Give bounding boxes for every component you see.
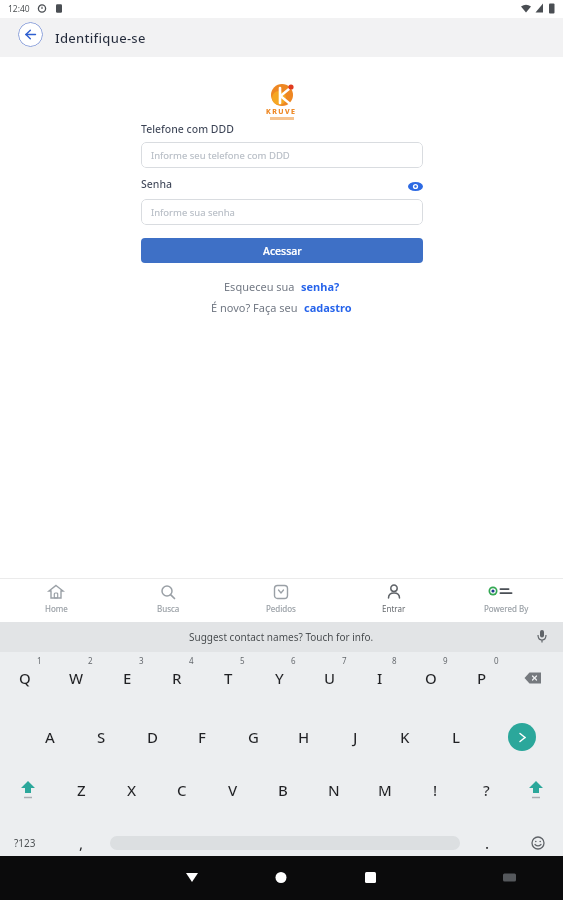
staticText: Telefone com DDD: [141, 122, 234, 136]
staticText: S: [97, 727, 106, 747]
staticText: I: [377, 668, 383, 688]
button[interactable]: P: [468, 665, 496, 691]
button[interactable]: O: [417, 665, 445, 691]
staticText: cadastro: [304, 300, 352, 315]
staticText: É novo? Faça seu: [211, 300, 304, 315]
staticText: E: [123, 668, 132, 688]
button[interactable]: Home: [0, 579, 112, 622]
button[interactable]: T: [214, 665, 242, 691]
button[interactable]: Acessar: [141, 238, 423, 263]
staticText: U: [324, 668, 336, 688]
button[interactable]: [524, 672, 542, 684]
staticText: K: [400, 727, 410, 747]
staticText: A: [45, 727, 55, 747]
button[interactable]: Z: [67, 777, 95, 803]
staticText: 7: [342, 655, 347, 666]
staticText: B: [278, 780, 288, 800]
staticText: 9: [443, 655, 448, 666]
button[interactable]: É novo? Faça seu: [211, 300, 352, 315]
button[interactable]: [19, 781, 37, 799]
button[interactable]: Informe sua senha: [141, 199, 423, 225]
button[interactable]: D: [138, 724, 166, 750]
staticText: Powered By: [484, 603, 529, 614]
button[interactable]: Powered By: [450, 579, 563, 622]
staticText: F: [198, 727, 206, 747]
staticText: 3: [139, 655, 144, 666]
staticText: P: [477, 668, 487, 688]
staticText: G: [248, 727, 259, 747]
staticText: !: [433, 780, 438, 800]
staticText: V: [228, 780, 238, 800]
button[interactable]: [531, 836, 545, 850]
button[interactable]: ?123: [9, 833, 41, 853]
button[interactable]: L: [442, 724, 470, 750]
staticText: C: [177, 780, 187, 800]
button[interactable]: F: [188, 724, 216, 750]
button[interactable]: K: [391, 724, 419, 750]
staticText: X: [127, 780, 137, 800]
button[interactable]: V: [219, 777, 247, 803]
button[interactable]: G: [239, 724, 267, 750]
staticText: Esqueceu sua: [224, 279, 301, 294]
button[interactable]: Busca: [112, 579, 224, 622]
button[interactable]: [508, 723, 536, 751]
staticText: ?: [483, 780, 490, 800]
staticText: R: [172, 668, 182, 688]
button[interactable]: Esqueceu sua: [224, 279, 340, 294]
staticText: H: [298, 727, 310, 747]
button[interactable]: I: [366, 665, 394, 691]
staticText: 5: [240, 655, 245, 666]
button[interactable]: [527, 781, 545, 799]
staticText: Z: [77, 780, 86, 800]
staticText: Y: [275, 668, 284, 688]
button[interactable]: C: [168, 777, 196, 803]
button[interactable]: A: [36, 724, 64, 750]
staticText: Entrar: [382, 603, 406, 614]
button[interactable]: N: [320, 777, 348, 803]
staticText: J: [353, 727, 358, 747]
staticText: Home: [45, 603, 68, 614]
button[interactable]: Informe seu telefone com DDD: [141, 142, 423, 168]
staticText: D: [147, 727, 158, 747]
button[interactable]: M: [371, 777, 399, 803]
staticText: Q: [19, 668, 31, 688]
staticText: Suggest contact names? Touch for info.: [189, 630, 374, 644]
button[interactable]: S: [87, 724, 115, 750]
staticText: 2: [88, 655, 93, 666]
staticText: ?123: [14, 836, 36, 850]
staticText: Busca: [157, 603, 180, 614]
staticText: .: [485, 833, 490, 853]
staticText: O: [425, 668, 437, 688]
staticText: Informe seu telefone com DDD: [151, 149, 290, 162]
staticText: 4: [189, 655, 194, 666]
button[interactable]: ,: [67, 830, 95, 856]
button[interactable]: X: [118, 777, 146, 803]
button[interactable]: [18, 22, 43, 47]
button[interactable]: !: [421, 777, 449, 803]
button[interactable]: Pedidos: [224, 579, 337, 622]
staticText: L: [452, 727, 461, 747]
button[interactable]: H: [290, 724, 318, 750]
button[interactable]: E: [113, 665, 141, 691]
staticText: Informe sua senha: [151, 206, 235, 219]
staticText: T: [224, 668, 233, 688]
staticText: 1: [37, 655, 42, 666]
button[interactable]: [408, 181, 423, 192]
staticText: Acessar: [263, 244, 302, 258]
button[interactable]: W: [62, 665, 90, 691]
button[interactable]: .: [473, 830, 501, 856]
staticText: Senha: [141, 177, 172, 191]
button[interactable]: U: [316, 665, 344, 691]
button[interactable]: ?: [472, 777, 500, 803]
staticText: senha?: [301, 279, 340, 294]
button[interactable]: B: [269, 777, 297, 803]
staticText: M: [378, 780, 392, 800]
button[interactable]: J: [341, 724, 369, 750]
button[interactable]: Entrar: [337, 579, 450, 622]
button[interactable]: Q: [11, 665, 39, 691]
button[interactable]: R: [163, 665, 191, 691]
staticText: KRUVE: [266, 107, 297, 117]
button[interactable]: Y: [265, 665, 293, 691]
staticText: ,: [79, 833, 84, 853]
